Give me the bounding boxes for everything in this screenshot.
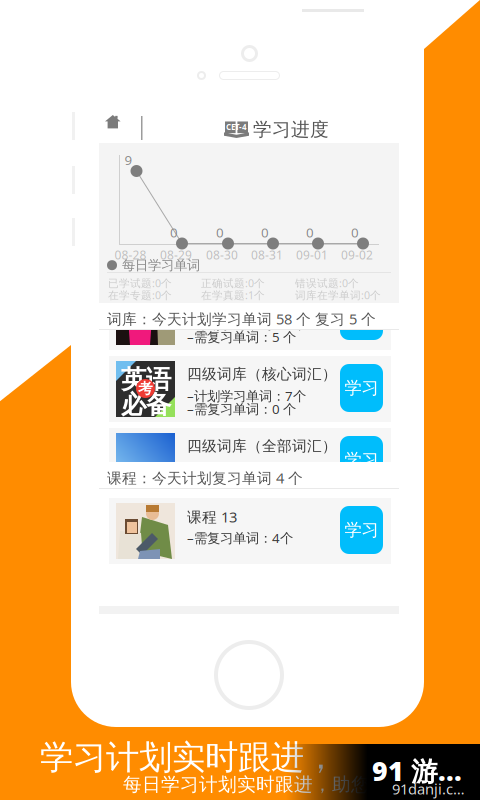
staticText: 学习 xyxy=(344,519,378,541)
staticText: –计划学习单词：42个 xyxy=(187,459,314,477)
staticText: 四级词库（全部词汇） xyxy=(187,437,337,455)
button[interactable]: 四级词库（全部词汇） xyxy=(109,428,391,494)
staticText: 考 xyxy=(138,379,153,397)
staticText: 每日学习单词 xyxy=(122,257,200,273)
staticText: –需复习单词：4个 xyxy=(187,529,293,547)
staticText: 学习 xyxy=(344,305,378,327)
staticText: 学习 xyxy=(344,377,378,399)
staticText: 英语 xyxy=(121,364,171,395)
staticText: 已学试题:0个 xyxy=(108,276,172,290)
staticText: 在学专题:0个 xyxy=(108,288,172,302)
staticText: 0 xyxy=(170,223,178,241)
staticText: 四级词库（核心词汇） xyxy=(187,365,337,383)
staticText: 0 xyxy=(351,223,359,241)
staticText: 词库：今天计划学习单词 58 个 复习 5 个 xyxy=(107,309,376,328)
staticText: –计划学习单词：7个 xyxy=(187,387,306,405)
staticText: 08-28 xyxy=(114,247,146,263)
staticText: 08-29 xyxy=(160,247,192,263)
staticText: 09-01 xyxy=(296,247,328,263)
staticText: –需复习单词：0 个 xyxy=(187,400,296,418)
staticText: 学习进度 xyxy=(253,118,329,141)
staticText: 0 xyxy=(216,223,224,241)
staticText: 四级词库（重点词汇） xyxy=(187,293,337,311)
staticText: 学习计划实时跟进， xyxy=(40,737,337,778)
staticText: –需复习单词：0 个 xyxy=(187,472,296,490)
staticText: 08-30 xyxy=(206,247,238,263)
button[interactable]: 学习 xyxy=(109,284,391,350)
staticText: –计划学习单词：9个 xyxy=(187,315,306,333)
button[interactable]: 学习 xyxy=(109,498,391,564)
staticText: 学习 xyxy=(344,449,378,471)
staticText: CET-4 xyxy=(226,122,247,132)
button[interactable]: 课程 13 xyxy=(109,498,391,564)
staticText: 课程：今天计划复习单词 4 个 xyxy=(107,468,303,487)
staticText: –需复习单词：5 个 xyxy=(187,328,296,346)
button[interactable]: Home xyxy=(99,112,399,144)
staticText: 0 xyxy=(306,223,314,241)
staticText: 课程 13 xyxy=(187,507,237,526)
staticText: 词库在学单词:0个 xyxy=(295,288,381,302)
staticText: 在学真题:1个 xyxy=(201,288,265,302)
button[interactable]: 学习 xyxy=(109,356,391,422)
staticText: 09-02 xyxy=(341,247,373,263)
button[interactable]: 学习 xyxy=(109,428,391,494)
staticText: 9 xyxy=(124,151,132,169)
staticText: 0 xyxy=(261,223,269,241)
button[interactable]: 英语 xyxy=(109,356,391,422)
staticText: 必备 xyxy=(121,389,171,420)
staticText: 每日学习计划实时跟进，助您 xyxy=(123,773,370,796)
staticText: 08-31 xyxy=(251,247,283,263)
staticText: 91danji.com xyxy=(392,779,466,798)
staticText: 91 游戏 xyxy=(372,753,464,788)
staticText: 错误试题:0个 xyxy=(295,276,359,290)
staticText: 正确试题:0个 xyxy=(201,276,265,290)
button[interactable]: 四级词库（重点词汇） xyxy=(109,284,391,350)
